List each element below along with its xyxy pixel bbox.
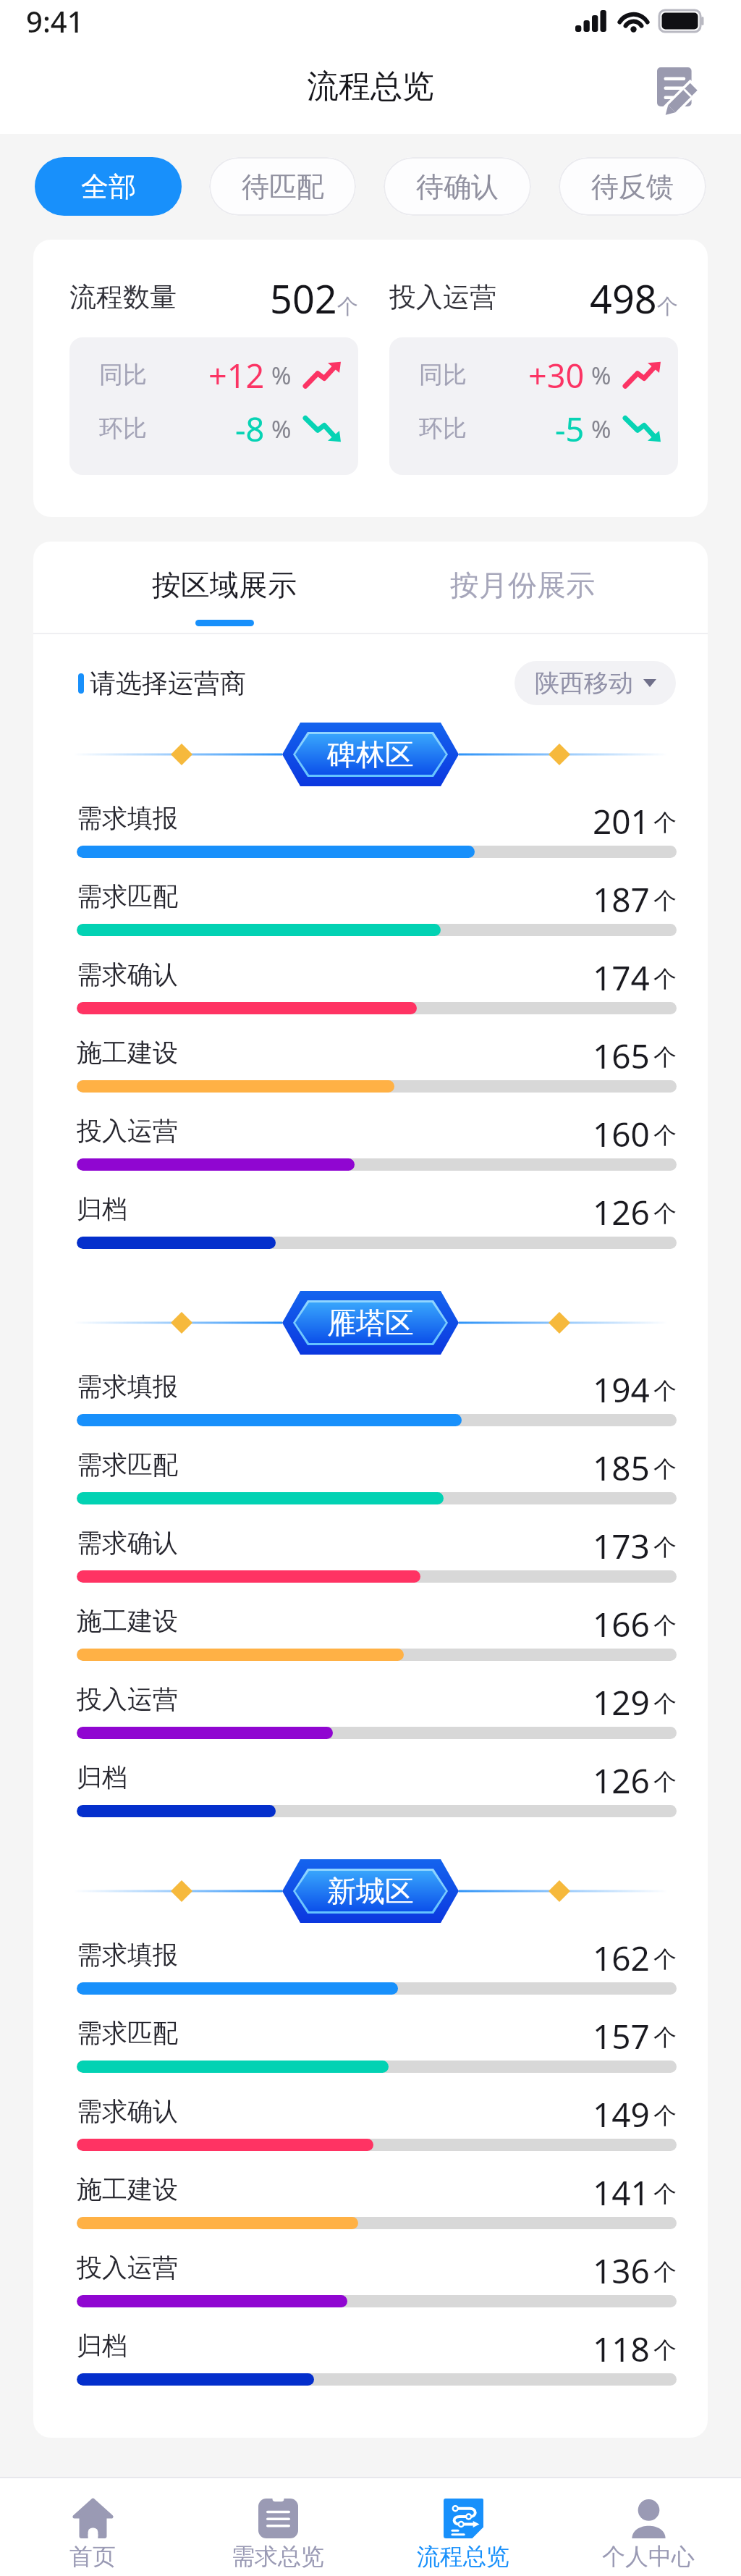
staticText: 149 — [593, 2092, 650, 2131]
button[interactable]: 待反馈 — [559, 157, 706, 216]
staticText: 待匹配 — [242, 169, 324, 204]
staticText: 个 — [657, 293, 678, 320]
staticText: 个 — [653, 2023, 677, 2052]
staticText: 投入运营 — [389, 280, 496, 314]
staticText: 需求填报 — [77, 802, 178, 834]
staticText: 个 — [653, 2179, 677, 2208]
button[interactable]: 按区域展示 — [145, 545, 303, 625]
staticText: 个 — [653, 1533, 677, 1562]
staticText: 个 — [653, 1689, 677, 1718]
staticText: % — [591, 413, 611, 445]
staticText: 个 — [653, 2101, 677, 2130]
staticText: 流程总览 — [307, 67, 434, 106]
staticText: 施工建设 — [77, 1605, 178, 1637]
staticText: 173 — [593, 1523, 650, 1562]
staticText: 投入运营 — [77, 1115, 178, 1147]
staticText: 需求总览 — [232, 2542, 324, 2571]
staticText: 流程数量 — [69, 280, 177, 314]
staticText: 施工建设 — [77, 1037, 178, 1069]
staticText: 环比 — [419, 413, 467, 444]
staticText: 160 — [593, 1111, 650, 1150]
staticText: 投入运营 — [77, 1683, 178, 1715]
staticText: 194 — [593, 1367, 650, 1406]
staticText: 陕西移动 — [535, 668, 633, 699]
staticText: 个 — [653, 1945, 677, 1974]
staticText: 同比 — [419, 360, 467, 390]
staticText: -5 — [555, 407, 585, 450]
staticText: 个 — [653, 1455, 677, 1483]
staticText: 按月份展示 — [450, 567, 595, 603]
button[interactable]: 待确认 — [384, 157, 531, 216]
staticText: 归档 — [77, 1761, 127, 1793]
staticText: 需求确认 — [77, 959, 178, 990]
staticText: 141 — [593, 2170, 650, 2209]
staticText: 需求填报 — [77, 1939, 178, 1971]
staticText: 个 — [653, 1767, 677, 1796]
staticText: 个 — [653, 808, 677, 837]
staticText: 174 — [593, 955, 650, 994]
staticText: 个 — [653, 1611, 677, 1640]
staticText: 需求匹配 — [77, 2017, 178, 2049]
staticText: 投入运营 — [77, 2252, 178, 2284]
staticText: 个 — [653, 964, 677, 993]
staticText: 个人中心 — [602, 2542, 695, 2571]
staticText: 需求确认 — [77, 1527, 178, 1559]
staticText: % — [591, 359, 611, 392]
staticText: 需求填报 — [77, 1371, 178, 1402]
staticText: 首页 — [69, 2542, 116, 2571]
button[interactable]: 全部 — [35, 157, 182, 216]
staticText: 环比 — [99, 413, 147, 444]
staticText: 129 — [593, 1680, 650, 1719]
staticText: 施工建设 — [77, 2173, 178, 2205]
staticText: -8 — [235, 407, 265, 450]
staticText: 需求匹配 — [77, 880, 178, 912]
staticText: 9:41 — [26, 1, 84, 41]
staticText: 165 — [593, 1033, 650, 1072]
staticText: 按区域展示 — [152, 567, 297, 603]
staticText: % — [271, 359, 292, 392]
button[interactable]: 首页 — [0, 2478, 185, 2576]
staticText: 个 — [653, 2336, 677, 2365]
staticText: 归档 — [77, 1193, 127, 1225]
staticText: 归档 — [77, 2330, 127, 2362]
staticText: 需求确认 — [77, 2095, 178, 2127]
staticText: 126 — [593, 1758, 650, 1797]
staticText: 118 — [593, 2326, 650, 2365]
staticText: 201 — [593, 799, 650, 838]
staticText: 个 — [653, 1199, 677, 1228]
staticText: +12 — [208, 353, 265, 397]
staticText: 个 — [653, 2257, 677, 2286]
staticText: 187 — [593, 877, 650, 916]
staticText: 待确认 — [416, 169, 499, 204]
staticText: +30 — [528, 353, 585, 397]
staticText: 126 — [593, 1190, 650, 1229]
button[interactable]: 流程总览 — [370, 2478, 556, 2576]
staticText: 同比 — [99, 360, 147, 390]
staticText: 新城区 — [327, 1873, 414, 1909]
staticText: 碑林区 — [327, 736, 414, 773]
staticText: 个 — [653, 886, 677, 915]
staticText: 个 — [337, 293, 358, 320]
staticText: 请选择运营商 — [90, 667, 246, 699]
button[interactable]: 需求总览 — [185, 2478, 370, 2576]
staticText: 全部 — [81, 169, 136, 204]
staticText: % — [271, 413, 292, 445]
button[interactable]: 按月份展示 — [444, 545, 601, 625]
staticText: 136 — [593, 2248, 650, 2287]
staticText: 流程总览 — [417, 2542, 509, 2571]
button[interactable]: 个人中心 — [556, 2478, 741, 2576]
staticText: 157 — [593, 2013, 650, 2053]
staticText: 雁塔区 — [327, 1305, 414, 1341]
button[interactable]: 待匹配 — [209, 157, 356, 216]
staticText: 498 — [590, 272, 657, 322]
button[interactable]: 陕西移动 — [515, 661, 676, 705]
staticText: 166 — [593, 1601, 650, 1641]
staticText: 185 — [593, 1445, 650, 1484]
staticText: 502 — [270, 272, 337, 322]
button[interactable]: 编辑 — [650, 59, 705, 114]
staticText: 162 — [593, 1935, 650, 1974]
staticText: 需求匹配 — [77, 1449, 178, 1481]
staticText: 待反馈 — [591, 169, 674, 204]
staticText: 个 — [653, 1121, 677, 1150]
staticText: 个 — [653, 1043, 677, 1072]
